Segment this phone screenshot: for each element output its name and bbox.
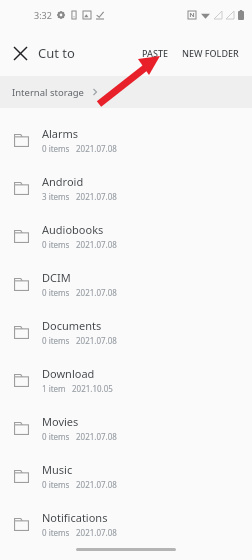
staticText: PASTE [142, 47, 168, 59]
staticText: 2021.10.05 [72, 383, 113, 394]
staticText: 2021.07.08 [76, 335, 117, 346]
staticText: 2021.07.08 [76, 527, 117, 538]
staticText: 3:32 [34, 9, 52, 21]
staticText: Documents [42, 318, 102, 333]
staticText: 2021.07.08 [76, 479, 117, 490]
staticText: Music [42, 462, 73, 477]
staticText: 0 items [42, 431, 70, 442]
staticText: 3 items [42, 191, 70, 202]
staticText: Cut to [38, 44, 75, 62]
staticText: Download [42, 366, 95, 381]
staticText: Movies [42, 414, 79, 429]
staticText: 1 item [42, 383, 66, 394]
button[interactable]: Android [0, 164, 252, 212]
staticText: 0 items [42, 479, 70, 490]
button[interactable]: PASTE [139, 41, 171, 65]
staticText: 0 items [42, 335, 70, 346]
staticText: 0 items [42, 239, 70, 250]
staticText: 2021.07.08 [76, 287, 117, 298]
staticText: 0 items [42, 287, 70, 298]
staticText: DCIM [42, 270, 71, 285]
button[interactable]: Music [0, 452, 252, 500]
staticText: Audiobooks [42, 222, 104, 237]
button[interactable]: Movies [0, 404, 252, 452]
staticText: 2021.07.08 [76, 239, 117, 250]
staticText: 2021.07.08 [76, 431, 117, 442]
button[interactable]: Download [0, 356, 252, 404]
staticText: 0 items [42, 143, 70, 154]
staticText: Alarms [42, 126, 79, 141]
button[interactable]: Close [8, 41, 32, 65]
staticText: Internal storage [12, 86, 84, 99]
button[interactable]: DCIM [0, 260, 252, 308]
button[interactable]: NEW FOLDER [179, 41, 242, 65]
button[interactable]: Internal storage [0, 76, 252, 108]
button[interactable]: Alarms [0, 116, 252, 164]
button[interactable]: Documents [0, 308, 252, 356]
staticText: Android [42, 174, 84, 189]
button[interactable]: Audiobooks [0, 212, 252, 260]
staticText: 0 items [42, 527, 70, 538]
staticText: NEW FOLDER [182, 47, 239, 59]
button[interactable]: Notifications [0, 500, 252, 548]
staticText: Notifications [42, 510, 108, 525]
staticText: 2021.07.08 [76, 143, 117, 154]
staticText: 2021.07.08 [76, 191, 117, 202]
